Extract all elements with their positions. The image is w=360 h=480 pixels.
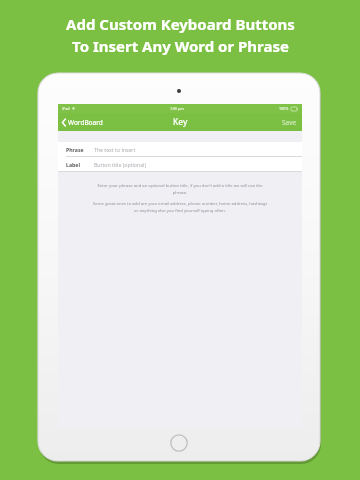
staticText: Label xyxy=(66,161,80,168)
staticText: Button title (optional) xyxy=(94,161,146,168)
staticText: To Insert Any Word or Phrase xyxy=(72,36,289,56)
staticText: Key xyxy=(173,116,188,128)
button[interactable]: Label xyxy=(58,157,302,171)
staticText: Save xyxy=(282,118,297,127)
staticText: 100% xyxy=(279,106,289,111)
staticText: Some great ones to add are your email ad… xyxy=(92,201,268,213)
button[interactable]: WordBoard xyxy=(58,115,107,130)
staticText: Add Custom Keyboard Buttons xyxy=(66,14,295,34)
staticText: WordBoard xyxy=(68,118,103,127)
staticText: Enter your phrase and an optional button… xyxy=(92,183,268,195)
staticText: The text to insert xyxy=(94,146,136,153)
button[interactable]: Phrase xyxy=(58,142,302,156)
button[interactable]: Save xyxy=(277,115,302,130)
staticText: 1:06 pm xyxy=(170,106,184,111)
staticText: iPad xyxy=(62,106,70,111)
staticText: Phrase xyxy=(66,146,84,153)
